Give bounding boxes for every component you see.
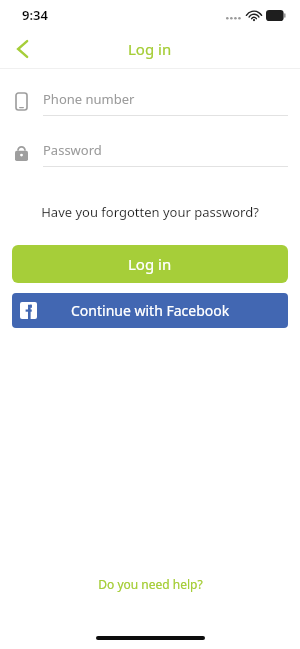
other: Phone xyxy=(0,86,43,116)
button[interactable]: Do you need help? xyxy=(0,572,300,596)
button[interactable]: Phone xyxy=(0,86,300,116)
staticText: Have you forgotten your password? xyxy=(41,203,259,221)
button[interactable]: Password xyxy=(0,137,300,167)
staticText: Do you need help? xyxy=(98,576,203,592)
button[interactable]: Continue with Facebook xyxy=(12,293,288,328)
button[interactable]: Log in xyxy=(12,245,288,283)
button[interactable]: Back xyxy=(0,30,44,68)
staticText: Log in xyxy=(128,39,172,59)
staticText: 9:34 xyxy=(22,6,48,24)
staticText: Password xyxy=(43,141,102,159)
other: Password xyxy=(0,137,43,167)
staticText: Continue with Facebook xyxy=(71,301,230,320)
button[interactable]: Have you forgotten your password? xyxy=(0,199,300,225)
staticText: Phone number xyxy=(43,90,135,108)
staticText: Log in xyxy=(128,254,172,274)
